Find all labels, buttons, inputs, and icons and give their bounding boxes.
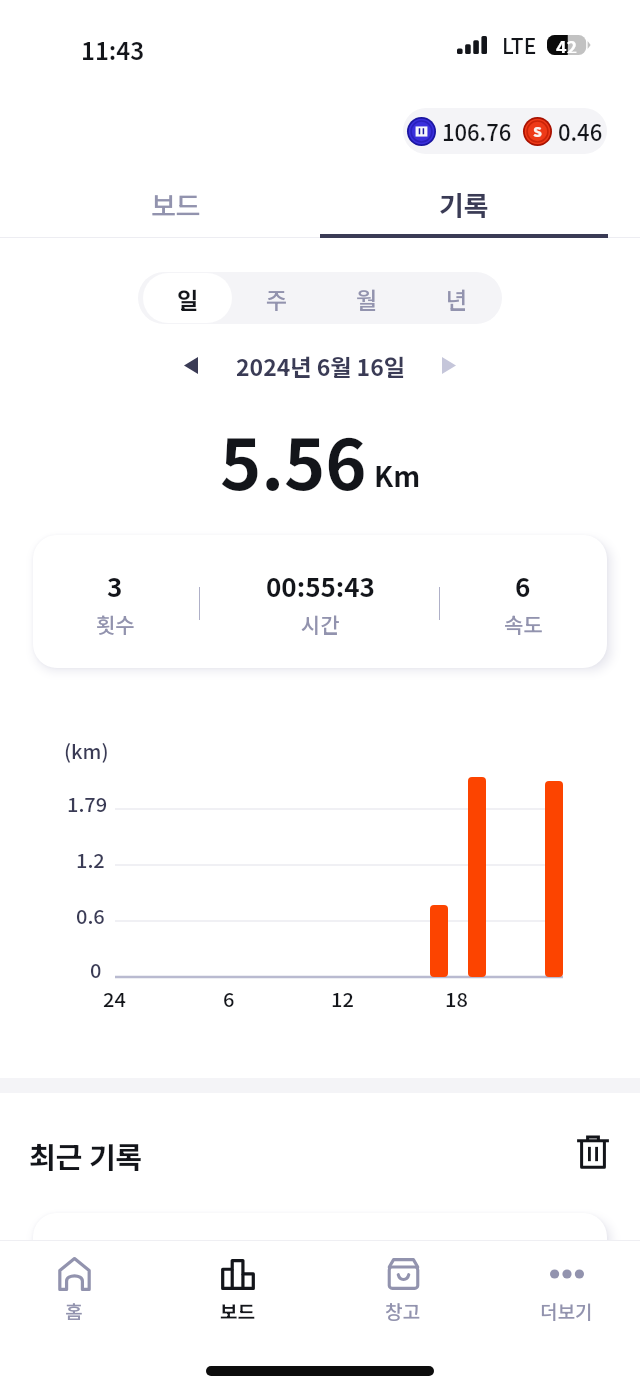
staticText: 6 — [515, 567, 531, 605]
staticText: 11:43 — [81, 32, 145, 67]
staticText: 창고 — [385, 1297, 420, 1325]
button[interactable]: 홈 — [10, 1241, 137, 1341]
staticText: 속도 — [504, 609, 543, 639]
button[interactable]: 주 — [232, 272, 322, 324]
button[interactable]: 106.76 — [403, 108, 607, 154]
staticText: 시간 — [301, 609, 340, 639]
staticText: (km) — [64, 736, 109, 765]
button[interactable]: 보드 — [174, 1241, 301, 1341]
staticText: Km — [374, 455, 421, 496]
staticText: 기록 — [439, 185, 489, 224]
staticText: 홈 — [65, 1297, 83, 1325]
staticText: 년 — [446, 282, 468, 315]
staticText: 24 — [103, 984, 126, 1013]
button[interactable]: 창고 — [339, 1241, 466, 1341]
staticText: 00:55:43 — [266, 567, 375, 605]
staticText: 0.46 — [558, 115, 603, 147]
staticText: 12 — [331, 984, 354, 1013]
button[interactable]: Previous day — [170, 344, 212, 386]
staticText: 3 — [107, 567, 123, 605]
button[interactable]: Next day — [428, 344, 470, 386]
staticText: 최근 기록 — [29, 1134, 143, 1176]
staticText: 보드 — [220, 1297, 255, 1325]
staticText: 42 — [556, 33, 578, 53]
staticText: 더보기 — [540, 1297, 593, 1325]
staticText: 2024년 6월 16일 — [236, 349, 405, 382]
staticText: 주 — [266, 282, 288, 315]
button[interactable]: 더보기 — [503, 1241, 630, 1341]
staticText: 보드 — [151, 185, 201, 224]
staticText: 106.76 — [442, 115, 512, 147]
staticText: 일 — [177, 282, 199, 315]
staticText: 월 — [356, 282, 378, 315]
button[interactable]: 년 — [412, 272, 502, 324]
button[interactable]: 일 — [143, 273, 232, 323]
staticText: 1.79 — [67, 789, 108, 818]
button[interactable]: 월 — [322, 272, 412, 324]
staticText: 0.6 — [76, 901, 105, 930]
staticText: 횟수 — [96, 609, 135, 639]
staticText: 18 — [445, 984, 468, 1013]
button[interactable]: 기록 — [320, 172, 608, 236]
staticText: 6 — [223, 984, 235, 1013]
button[interactable]: Delete — [571, 1131, 615, 1175]
staticText: 0 — [90, 955, 102, 984]
staticText: 5.56 — [220, 409, 367, 510]
button[interactable]: 보드 — [32, 172, 320, 236]
staticText: LTE — [502, 30, 537, 60]
staticText: 1.2 — [76, 845, 105, 874]
staticText: S — [533, 121, 542, 141]
